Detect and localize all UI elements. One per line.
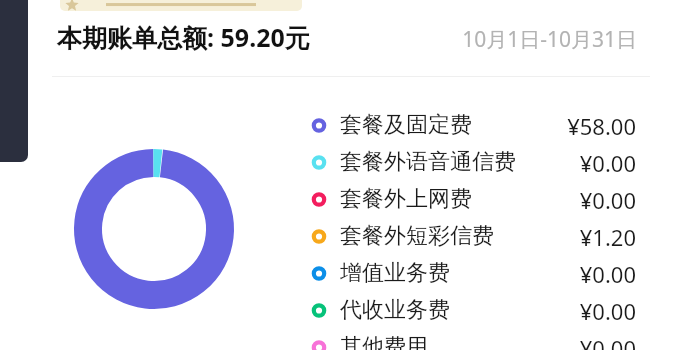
button[interactable]: 费用构成环形图 <box>74 149 234 309</box>
button[interactable]: 会员权益提示 <box>60 0 302 11</box>
staticText: 增值业务费 <box>340 259 450 287</box>
staticText: ¥0.00 <box>473 296 636 326</box>
staticText: 本期账单总额: 59.20元 <box>57 20 310 54</box>
staticText: ¥0.00 <box>473 185 636 215</box>
staticText: 其他费用 <box>340 333 428 350</box>
staticText: ¥58.00 <box>473 111 636 141</box>
staticText: ¥0.00 <box>473 148 636 178</box>
staticText: 套餐及固定费 <box>340 111 472 139</box>
button[interactable]: 代收业务费 <box>305 292 643 329</box>
button[interactable]: 套餐外短彩信费 <box>305 218 643 255</box>
staticText: 10月1日-10月31日 <box>437 25 637 54</box>
button[interactable]: 增值业务费 <box>305 255 643 292</box>
staticText: ¥1.20 <box>473 222 636 252</box>
staticText: ¥0.00 <box>473 259 636 289</box>
button[interactable]: 套餐外上网费 <box>305 181 643 218</box>
staticText: 套餐外上网费 <box>340 185 472 213</box>
staticText: 代收业务费 <box>340 296 450 324</box>
button[interactable]: 套餐外语音通信费 <box>305 144 643 181</box>
staticText: ¥0.00 <box>473 333 636 350</box>
button[interactable]: 套餐及固定费 <box>305 107 643 144</box>
staticText: 套餐外语音通信费 <box>340 148 516 176</box>
button[interactable]: 其他费用 <box>305 329 643 350</box>
staticText: 套餐外短彩信费 <box>340 222 494 250</box>
